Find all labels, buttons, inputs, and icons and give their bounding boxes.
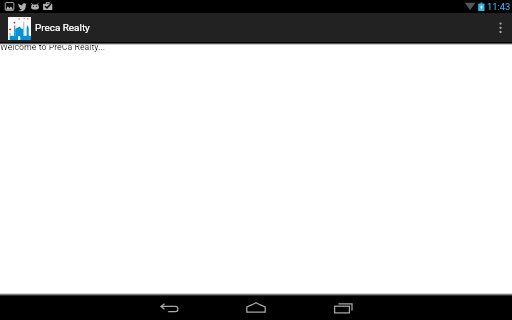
button[interactable]: Home (234, 296, 278, 320)
button[interactable]: More options (488, 13, 512, 42)
staticText: Welcome to PreCa Realty... (0, 42, 106, 52)
button[interactable]: Recent apps (321, 296, 365, 320)
button[interactable]: Preca Realty (0, 13, 512, 42)
button[interactable]: Back (148, 296, 191, 320)
staticText: Preca Realty (35, 22, 90, 34)
staticText: 11:43 (487, 1, 511, 12)
